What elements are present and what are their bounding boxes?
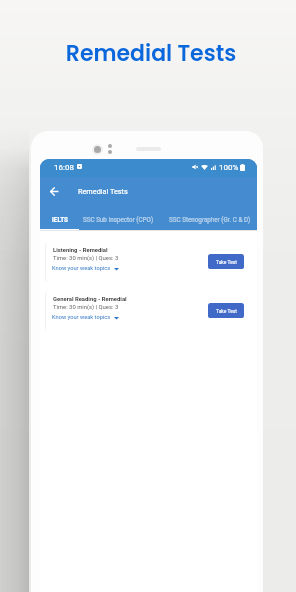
staticText: Time: 30 min(s) | Ques: 3 <box>53 304 119 311</box>
staticText: Know your weak topics <box>52 265 111 272</box>
button[interactable]: Take Test <box>208 254 244 269</box>
staticText: Take Test <box>216 308 237 314</box>
staticText: 16:08 <box>54 163 74 172</box>
button[interactable]: Back <box>43 180 65 202</box>
staticText: SSC Sub Inspector (CPO) <box>83 216 154 223</box>
staticText: Know your weak topics <box>52 314 111 321</box>
staticText: Remedial Tests <box>78 187 128 196</box>
staticText: Listening - Remedial <box>53 247 108 254</box>
button[interactable] <box>46 242 250 282</box>
button[interactable]: Know your weak topics <box>52 314 119 321</box>
staticText: SSC Stenographer (Gr. C & D) <box>169 216 251 223</box>
button[interactable]: SSC Stenographer (Gr. C & D) <box>157 208 257 230</box>
staticText: General Reading - Remedial <box>53 296 127 303</box>
button[interactable] <box>46 291 250 331</box>
staticText: Remedial Tests <box>3 38 296 69</box>
staticText: IELTS <box>52 216 68 223</box>
button[interactable]: Take Test <box>208 303 244 318</box>
staticText: Time: 30 min(s) | Ques: 3 <box>53 255 119 262</box>
staticText: Take Test <box>216 259 237 265</box>
button[interactable]: IELTS <box>40 208 79 230</box>
button[interactable]: SSC Sub Inspector (CPO) <box>79 208 157 230</box>
staticText: 100% <box>219 163 239 172</box>
button[interactable]: Know your weak topics <box>52 265 119 272</box>
